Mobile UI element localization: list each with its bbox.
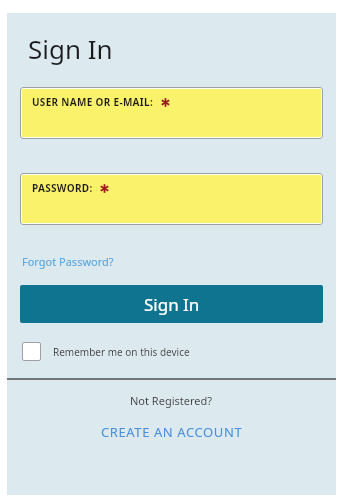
staticText: Forgot Password? [22,254,114,269]
button[interactable]: USER NAME OR E-MAIL: [22,89,321,137]
staticText: PASSWORD: [32,181,93,195]
button[interactable]: Remember me on this device [22,342,190,361]
staticText: Remember me on this device [53,345,190,359]
staticText: Not Registered? [130,393,213,408]
staticText: USER NAME OR E-MAIL: [32,95,154,109]
staticText: Sign In [28,31,113,66]
button[interactable]: Forgot Password? [22,252,114,271]
button[interactable]: CREATE AN ACCOUNT [95,420,249,444]
button[interactable]: Sign In [20,285,323,323]
button[interactable]: PASSWORD: [22,175,321,223]
staticText: Sign In [144,293,200,316]
staticText: CREATE AN ACCOUNT [101,423,243,441]
